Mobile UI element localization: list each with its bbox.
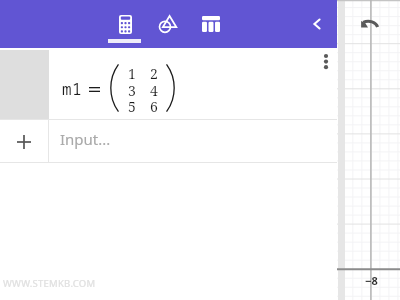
staticText: −8 <box>365 273 378 288</box>
button[interactable]: Calculator <box>101 0 149 44</box>
button[interactable]: Undo <box>356 16 384 32</box>
staticText: 1 <box>128 64 136 80</box>
button[interactable]: Add input row <box>0 120 48 163</box>
staticText: 5 <box>128 97 136 113</box>
button[interactable]: Collapse panel <box>303 10 331 38</box>
button[interactable]: Table <box>187 0 235 44</box>
button[interactable]: More options <box>314 48 338 74</box>
button[interactable]: Geometry <box>142 0 190 44</box>
staticText: Input... <box>60 129 111 149</box>
staticText: WWW.STEMKB.COM <box>3 277 96 290</box>
button[interactable]: Matrix m1 expression row <box>0 50 337 119</box>
staticText: 4 <box>150 81 158 97</box>
staticText: 3 <box>128 81 136 97</box>
staticText: m1 <box>62 78 83 100</box>
button[interactable]: Input... <box>49 120 337 163</box>
staticText: 2 <box>150 64 158 80</box>
staticText: 6 <box>150 97 158 113</box>
